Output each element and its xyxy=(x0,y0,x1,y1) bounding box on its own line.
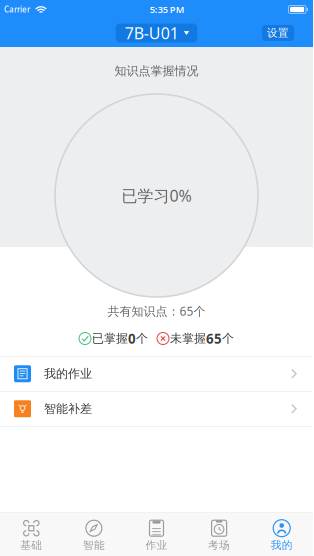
staticText: 设置 xyxy=(267,26,289,39)
button[interactable]: 智能补差 xyxy=(0,391,313,426)
button[interactable]: 作业 xyxy=(125,513,188,556)
staticText: 个 xyxy=(136,331,148,346)
staticText: 考场 xyxy=(208,539,230,552)
staticText: 5:35 PM xyxy=(150,3,185,16)
button[interactable]: 我的 xyxy=(250,513,313,556)
staticText: 已掌握 xyxy=(92,331,128,346)
staticText: 我的 xyxy=(271,539,293,552)
staticText: 未掌握 xyxy=(170,331,206,346)
staticText: 基础 xyxy=(20,539,42,552)
staticText: 知识点掌握情况 xyxy=(114,64,198,78)
button[interactable]: 7B-U01 xyxy=(116,23,197,42)
staticText: 作业 xyxy=(145,539,167,552)
staticText: 7B-U01 xyxy=(125,22,179,44)
staticText: 共有知识点：65个 xyxy=(107,303,205,319)
staticText: 智能补差 xyxy=(44,401,92,416)
staticText: 我的作业 xyxy=(44,366,92,381)
staticText: Carrier xyxy=(4,4,30,15)
button[interactable]: 考场 xyxy=(188,513,250,556)
button[interactable]: 我的作业 xyxy=(0,356,313,391)
staticText: 65 xyxy=(206,330,222,347)
staticText: 已学习0% xyxy=(121,185,191,206)
staticText: 个 xyxy=(222,331,234,346)
staticText: 0 xyxy=(128,330,136,347)
staticText: 智能 xyxy=(83,539,105,552)
button[interactable]: 基础 xyxy=(0,513,63,556)
button[interactable]: 智能 xyxy=(63,513,125,556)
button[interactable]: 设置 xyxy=(262,25,294,41)
